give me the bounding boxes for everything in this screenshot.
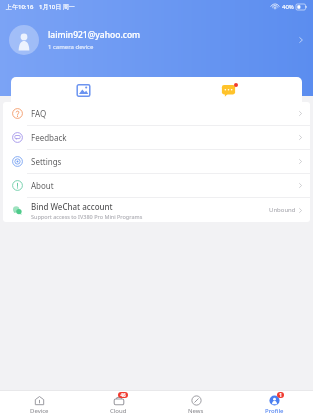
button[interactable]: 1 (235, 391, 313, 417)
staticText: Device (30, 407, 49, 415)
staticText: laimin921@yahoo.com (48, 29, 141, 41)
button[interactable]: News (157, 391, 235, 417)
staticText: Profile (265, 407, 284, 415)
button[interactable]: Messages (156, 77, 302, 115)
button[interactable]: Album (11, 77, 156, 115)
staticText: Unbound (269, 206, 296, 214)
staticText: Settings (31, 156, 299, 167)
button[interactable]: Feedback (3, 126, 310, 149)
button[interactable]: 46 (79, 391, 157, 417)
staticText: FAQ (31, 108, 299, 119)
button[interactable]: Settings (3, 150, 310, 173)
staticText: About (31, 180, 299, 191)
staticText: News (188, 407, 204, 415)
staticText: 1 (279, 392, 282, 398)
button[interactable]: laimin921@yahoo.com (0, 18, 313, 62)
button[interactable]: About (3, 174, 310, 197)
staticText: Support access to IV380 Pro Mini Program… (31, 213, 143, 220)
button[interactable]: FAQ (3, 102, 310, 125)
staticText: 上午10:16 (6, 3, 34, 11)
staticText: Cloud (110, 407, 127, 415)
staticText: Feedback (31, 132, 299, 143)
staticText: 40% (282, 3, 294, 11)
staticText: 1月10日 周一 (39, 3, 75, 11)
button[interactable]: Device (0, 391, 79, 417)
staticText: 1 camera device (48, 43, 94, 51)
button[interactable]: Bind WeChat account (3, 198, 310, 222)
staticText: Bind WeChat account (31, 201, 113, 212)
staticText: 46 (120, 392, 126, 398)
